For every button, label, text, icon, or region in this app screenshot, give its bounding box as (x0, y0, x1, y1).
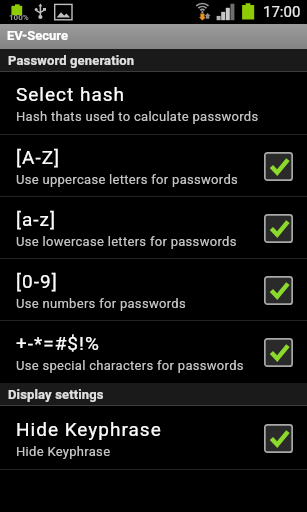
button[interactable]: Toggle setting (264, 424, 293, 453)
button[interactable]: Select hash (0, 72, 307, 134)
staticText: [A-Z] (16, 146, 61, 168)
staticText: [0-9] (16, 270, 58, 292)
button[interactable]: [a-z] (0, 197, 307, 258)
staticText: EV-Secure (7, 28, 68, 43)
staticText: Use numbers for passwords (16, 296, 186, 311)
staticText: Hide Keyphrase (16, 444, 111, 459)
button[interactable]: Toggle setting (264, 276, 293, 305)
staticText: Use lowercase letters for passwords (16, 234, 237, 249)
button[interactable]: Toggle setting (264, 214, 293, 243)
staticText: Use uppercase letters for passwords (16, 172, 239, 187)
staticText: 100% (9, 13, 29, 22)
staticText: Password generation (8, 53, 135, 68)
button[interactable]: [0-9] (0, 259, 307, 320)
button[interactable]: Toggle setting (264, 338, 293, 367)
button[interactable]: [A-Z] (0, 135, 307, 196)
staticText: Use special characters for passwords (16, 358, 244, 373)
staticText: 17:00 (263, 3, 301, 21)
staticText: Display settings (8, 387, 104, 402)
staticText: +-*=#$!% (16, 332, 100, 354)
button[interactable]: +-*=#$!% (0, 321, 307, 383)
button[interactable]: Toggle setting (264, 152, 293, 181)
staticText: [a-z] (16, 208, 57, 230)
staticText: Select hash (16, 83, 125, 105)
staticText: Hide Keyphrase (16, 418, 162, 440)
staticText: Hash thats used to calculate passwords (16, 109, 259, 124)
button[interactable]: Hide Keyphrase (0, 406, 307, 469)
